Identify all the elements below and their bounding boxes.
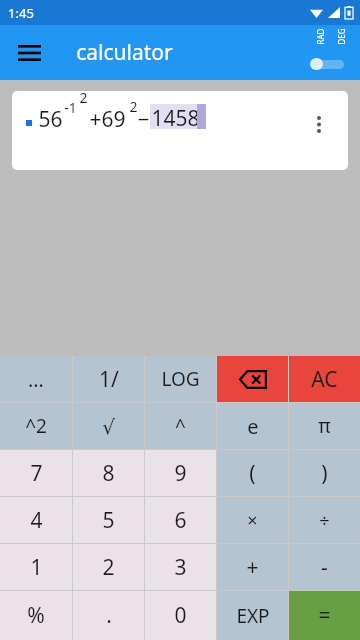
staticText: calculator <box>76 38 173 67</box>
staticText: +69 <box>89 105 126 134</box>
staticText: 56 <box>38 105 63 134</box>
staticText: 7 <box>30 459 43 488</box>
staticText: ^ <box>175 413 186 439</box>
staticText: EXP <box>236 603 270 629</box>
staticText: ÷ <box>319 508 330 533</box>
button[interactable]: ^ <box>145 403 216 449</box>
staticText: ( <box>249 459 256 488</box>
button[interactable]: ( <box>217 450 288 496</box>
button[interactable]: 8 <box>73 450 144 496</box>
staticText: 1:45 <box>8 4 34 22</box>
button[interactable]: e <box>217 403 288 449</box>
staticText: 9 <box>174 459 187 488</box>
staticText: . <box>106 601 112 630</box>
button[interactable]: … <box>0 356 72 402</box>
button[interactable]: 56 <box>12 91 348 170</box>
staticText: − <box>137 105 150 134</box>
staticText: √ <box>102 415 115 438</box>
staticText: -1 <box>64 98 77 117</box>
button[interactable]: 9 <box>145 450 216 496</box>
button[interactable]: % <box>0 591 72 640</box>
staticText: 1 <box>30 553 43 582</box>
staticText: 2 <box>102 553 115 582</box>
staticText: × <box>247 508 258 533</box>
staticText: ^2 <box>25 413 47 439</box>
button[interactable]: Open navigation drawer <box>12 36 46 70</box>
button[interactable]: More options <box>308 113 330 135</box>
staticText: 6 <box>174 506 187 535</box>
staticText: 1458 <box>151 104 200 129</box>
button[interactable]: π <box>289 403 360 449</box>
button[interactable]: . <box>73 591 144 640</box>
button[interactable]: × <box>217 497 288 543</box>
button[interactable]: 4 <box>0 497 72 543</box>
button[interactable]: ^2 <box>0 403 72 449</box>
button[interactable]: 3 <box>145 544 216 590</box>
staticText: 2 <box>79 91 88 107</box>
button[interactable]: Backspace <box>217 356 288 402</box>
button[interactable]: 0 <box>145 591 216 640</box>
staticText: 5 <box>102 506 115 535</box>
staticText: LOG <box>161 366 200 392</box>
staticText: RAD <box>314 28 325 44</box>
button[interactable]: Toggle radians or degrees <box>310 30 352 76</box>
button[interactable]: 7 <box>0 450 72 496</box>
button[interactable]: ) <box>289 450 360 496</box>
button[interactable]: LOG <box>145 356 216 402</box>
staticText: e <box>247 413 259 440</box>
staticText: π <box>318 413 331 439</box>
staticText: DEG <box>336 28 347 45</box>
button[interactable]: 5 <box>73 497 144 543</box>
staticText: % <box>27 601 45 630</box>
button[interactable]: EXP <box>217 591 288 640</box>
staticText: AC <box>311 365 338 394</box>
staticText: 0 <box>174 601 187 630</box>
staticText: 2 <box>129 97 138 116</box>
button[interactable]: = <box>289 591 360 640</box>
button[interactable]: - <box>289 544 360 590</box>
staticText: = <box>318 601 331 630</box>
staticText: ) <box>321 459 328 488</box>
button[interactable]: 1 <box>0 544 72 590</box>
staticText: 4 <box>30 506 43 535</box>
staticText: … <box>28 366 44 393</box>
staticText: + <box>246 553 259 582</box>
button[interactable]: + <box>217 544 288 590</box>
button[interactable]: 6 <box>145 497 216 543</box>
button[interactable]: √ <box>73 403 144 449</box>
staticText: 3 <box>174 553 187 582</box>
button[interactable]: AC <box>289 356 360 402</box>
button[interactable]: ÷ <box>289 497 360 543</box>
staticText: 8 <box>102 459 115 488</box>
button[interactable]: 1/ <box>73 356 144 402</box>
staticText: 1/ <box>99 365 119 394</box>
button[interactable]: 2 <box>73 544 144 590</box>
staticText: - <box>321 553 328 582</box>
